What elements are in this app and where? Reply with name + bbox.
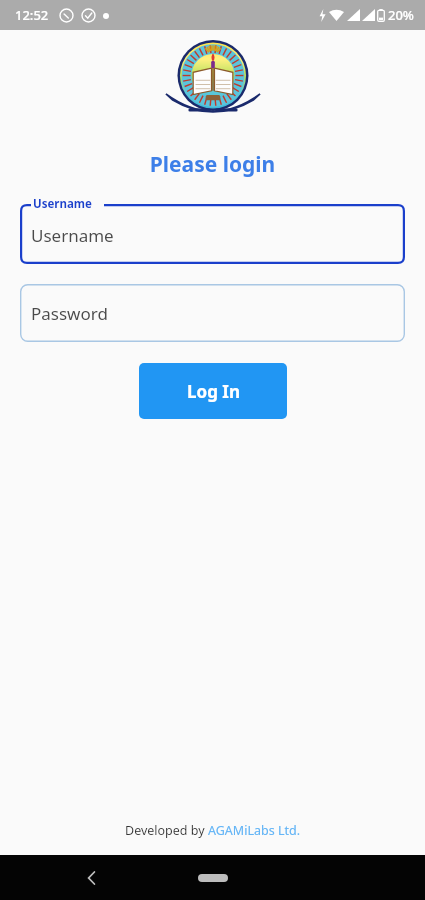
staticText: Log In — [187, 380, 240, 403]
staticText: Developed by — [125, 822, 208, 839]
staticText: 12:52 — [15, 6, 49, 24]
staticText: Username — [33, 196, 92, 212]
button[interactable]: Log In — [139, 363, 287, 419]
staticText: Please login — [0, 150, 425, 179]
staticText: Password — [31, 302, 108, 325]
button[interactable]: Home — [186, 865, 240, 891]
button[interactable]: Username — [20, 195, 405, 264]
button[interactable]: Password — [20, 284, 405, 342]
button[interactable]: AGAMiLabs Ltd. — [208, 822, 300, 839]
staticText: 20% — [388, 6, 414, 24]
staticText: Username — [31, 224, 114, 247]
button[interactable]: Back — [78, 864, 106, 892]
